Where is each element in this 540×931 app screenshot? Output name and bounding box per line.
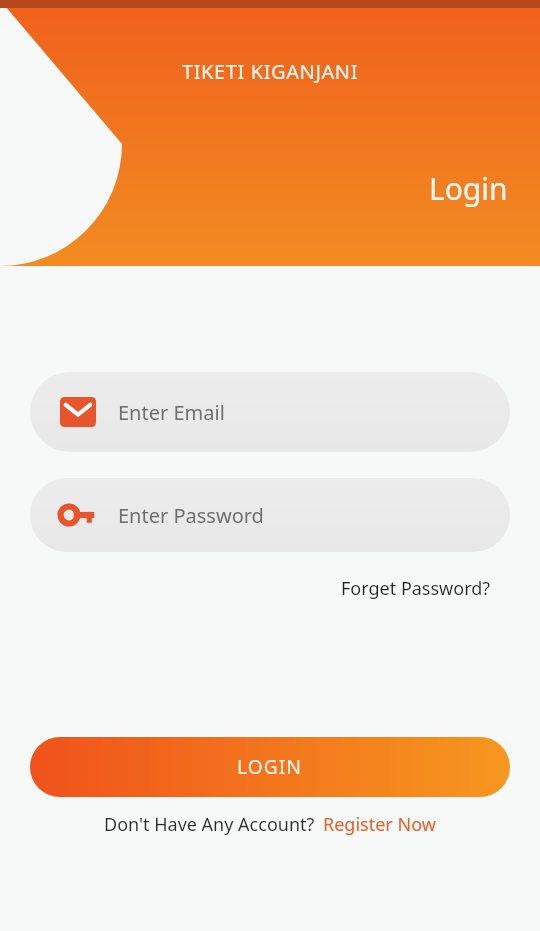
staticText: Forget Password? (341, 576, 491, 601)
staticText: Login (429, 168, 508, 209)
other: Email (60, 394, 96, 430)
staticText: TIKETI KIGANJANI (182, 58, 359, 85)
staticText: Enter Password (118, 502, 264, 529)
staticText: Register Now (323, 812, 436, 837)
staticText: Don't Have Any Account? (104, 812, 315, 837)
staticText: Enter Email (118, 399, 225, 426)
button[interactable]: LOGIN (30, 737, 510, 797)
button[interactable]: Forget Password? (337, 572, 495, 605)
button[interactable]: Email (30, 372, 510, 452)
staticText: LOGIN (237, 754, 303, 780)
button[interactable]: Register Now (323, 812, 436, 837)
other: Password (60, 497, 96, 533)
button[interactable]: Password (30, 478, 510, 552)
